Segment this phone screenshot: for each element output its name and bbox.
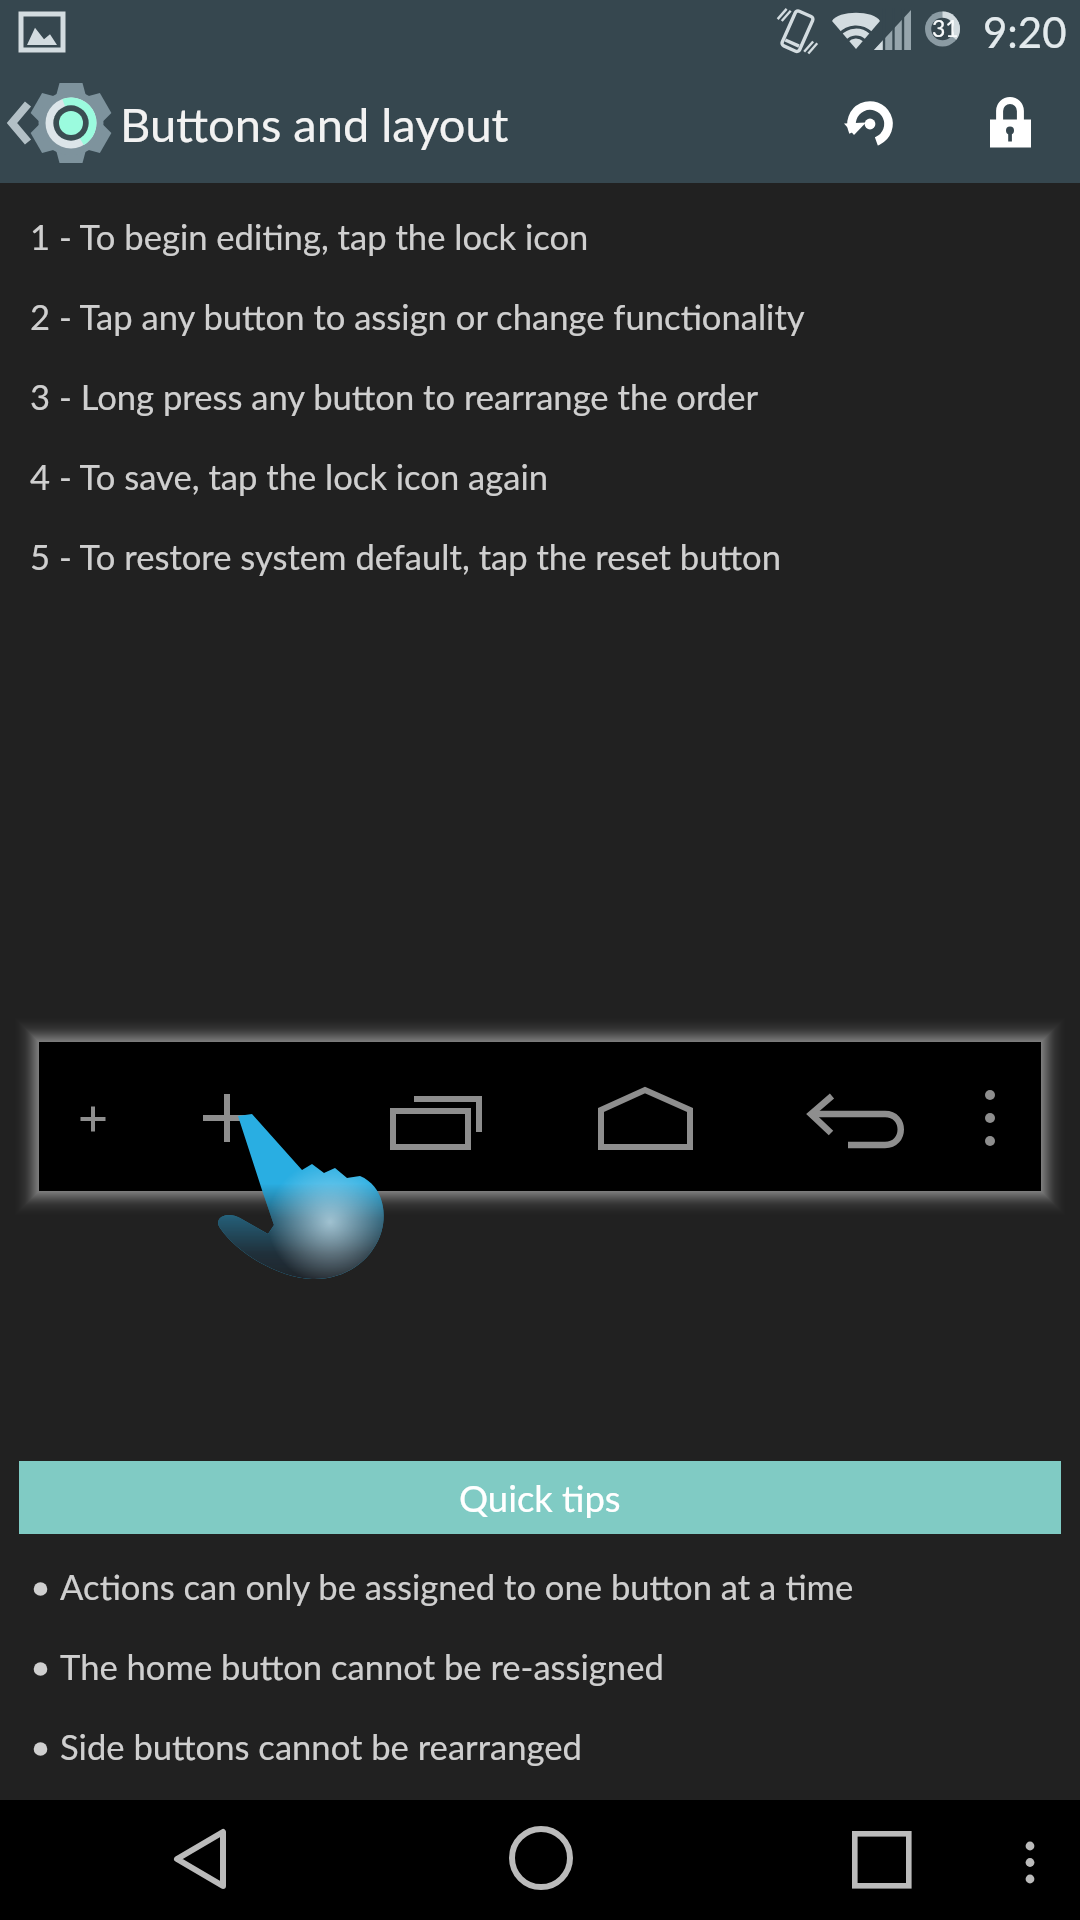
staticText: 31	[932, 14, 959, 42]
staticText: 5 - To restore system default, tap the r…	[30, 536, 781, 578]
button[interactable]: More options	[985, 1800, 1075, 1920]
button[interactable]: Home	[481, 1800, 601, 1920]
staticText: The home button cannot be re-assigned	[60, 1646, 664, 1688]
staticText: Actions can only be assigned to one butt…	[60, 1566, 854, 1608]
button[interactable]: Quick tips	[19, 1461, 1061, 1534]
staticText: Side buttons cannot be rearranged	[60, 1726, 582, 1768]
staticText: 9:20	[983, 7, 1067, 57]
button[interactable]: Navigate up	[0, 64, 118, 183]
staticText: 4 - To save, tap the lock icon again	[30, 456, 549, 498]
staticText: Quick tips	[459, 1476, 621, 1520]
button[interactable]: Lock	[952, 64, 1068, 183]
staticText: Buttons and layout	[120, 96, 509, 152]
staticText: 3 - Long press any button to rearrange t…	[30, 376, 759, 418]
button[interactable]: Recent apps	[820, 1800, 940, 1920]
staticText: 1 - To begin editing, tap the lock icon	[30, 216, 589, 258]
button[interactable]: Back	[140, 1800, 260, 1920]
staticText: 2 - Tap any button to assign or change f…	[30, 296, 805, 338]
button[interactable]: Reset to default	[812, 64, 928, 183]
